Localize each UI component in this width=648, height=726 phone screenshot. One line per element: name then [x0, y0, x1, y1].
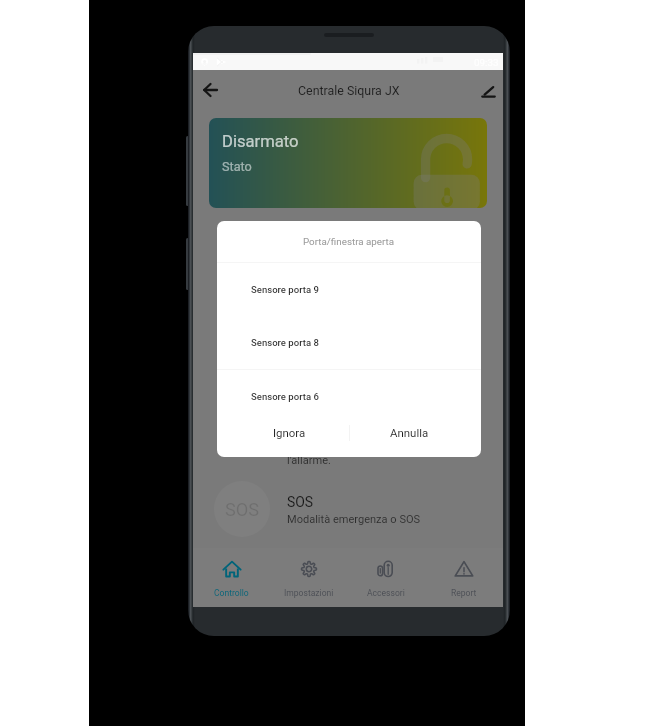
button[interactable]: Report	[425, 548, 503, 607]
button[interactable]: Sensore porta 9	[217, 262, 481, 315]
button[interactable]: Sensore porta 6	[217, 369, 481, 422]
staticText: SOS	[225, 499, 260, 520]
button[interactable]: SOS	[193, 472, 503, 544]
button[interactable]: Disarmato	[209, 118, 487, 208]
staticText: Disarmato	[222, 132, 299, 151]
staticText: Controllo	[214, 588, 249, 598]
button[interactable]: Back	[194, 74, 226, 106]
staticText: Sensore porta 6	[251, 391, 319, 402]
staticText: Sensore porta 8	[251, 337, 319, 348]
staticText: Sensore porta 9	[251, 284, 319, 295]
staticText: Modalità emergenza o SOS	[287, 513, 421, 526]
staticText: Report	[451, 588, 477, 598]
button[interactable]: Ignora	[273, 426, 306, 439]
staticText: Accessori	[367, 588, 405, 598]
button[interactable]: Annulla	[390, 426, 429, 439]
button[interactable]: Controllo	[193, 548, 270, 607]
staticText: SOS	[287, 494, 314, 510]
button[interactable]: Edit	[472, 75, 504, 107]
staticText: Stato	[222, 159, 252, 174]
button[interactable]: Impostazioni	[270, 548, 347, 607]
staticText: Centrale Siqura JX	[298, 83, 400, 98]
staticText: Impostazioni	[284, 588, 334, 598]
button[interactable]: Sensore porta 8	[217, 315, 481, 368]
staticText: Porta/finestra aperta	[303, 236, 395, 247]
button[interactable]: Accessori	[347, 548, 425, 607]
staticText: Premi per disinserire l'allarme.	[287, 441, 389, 467]
